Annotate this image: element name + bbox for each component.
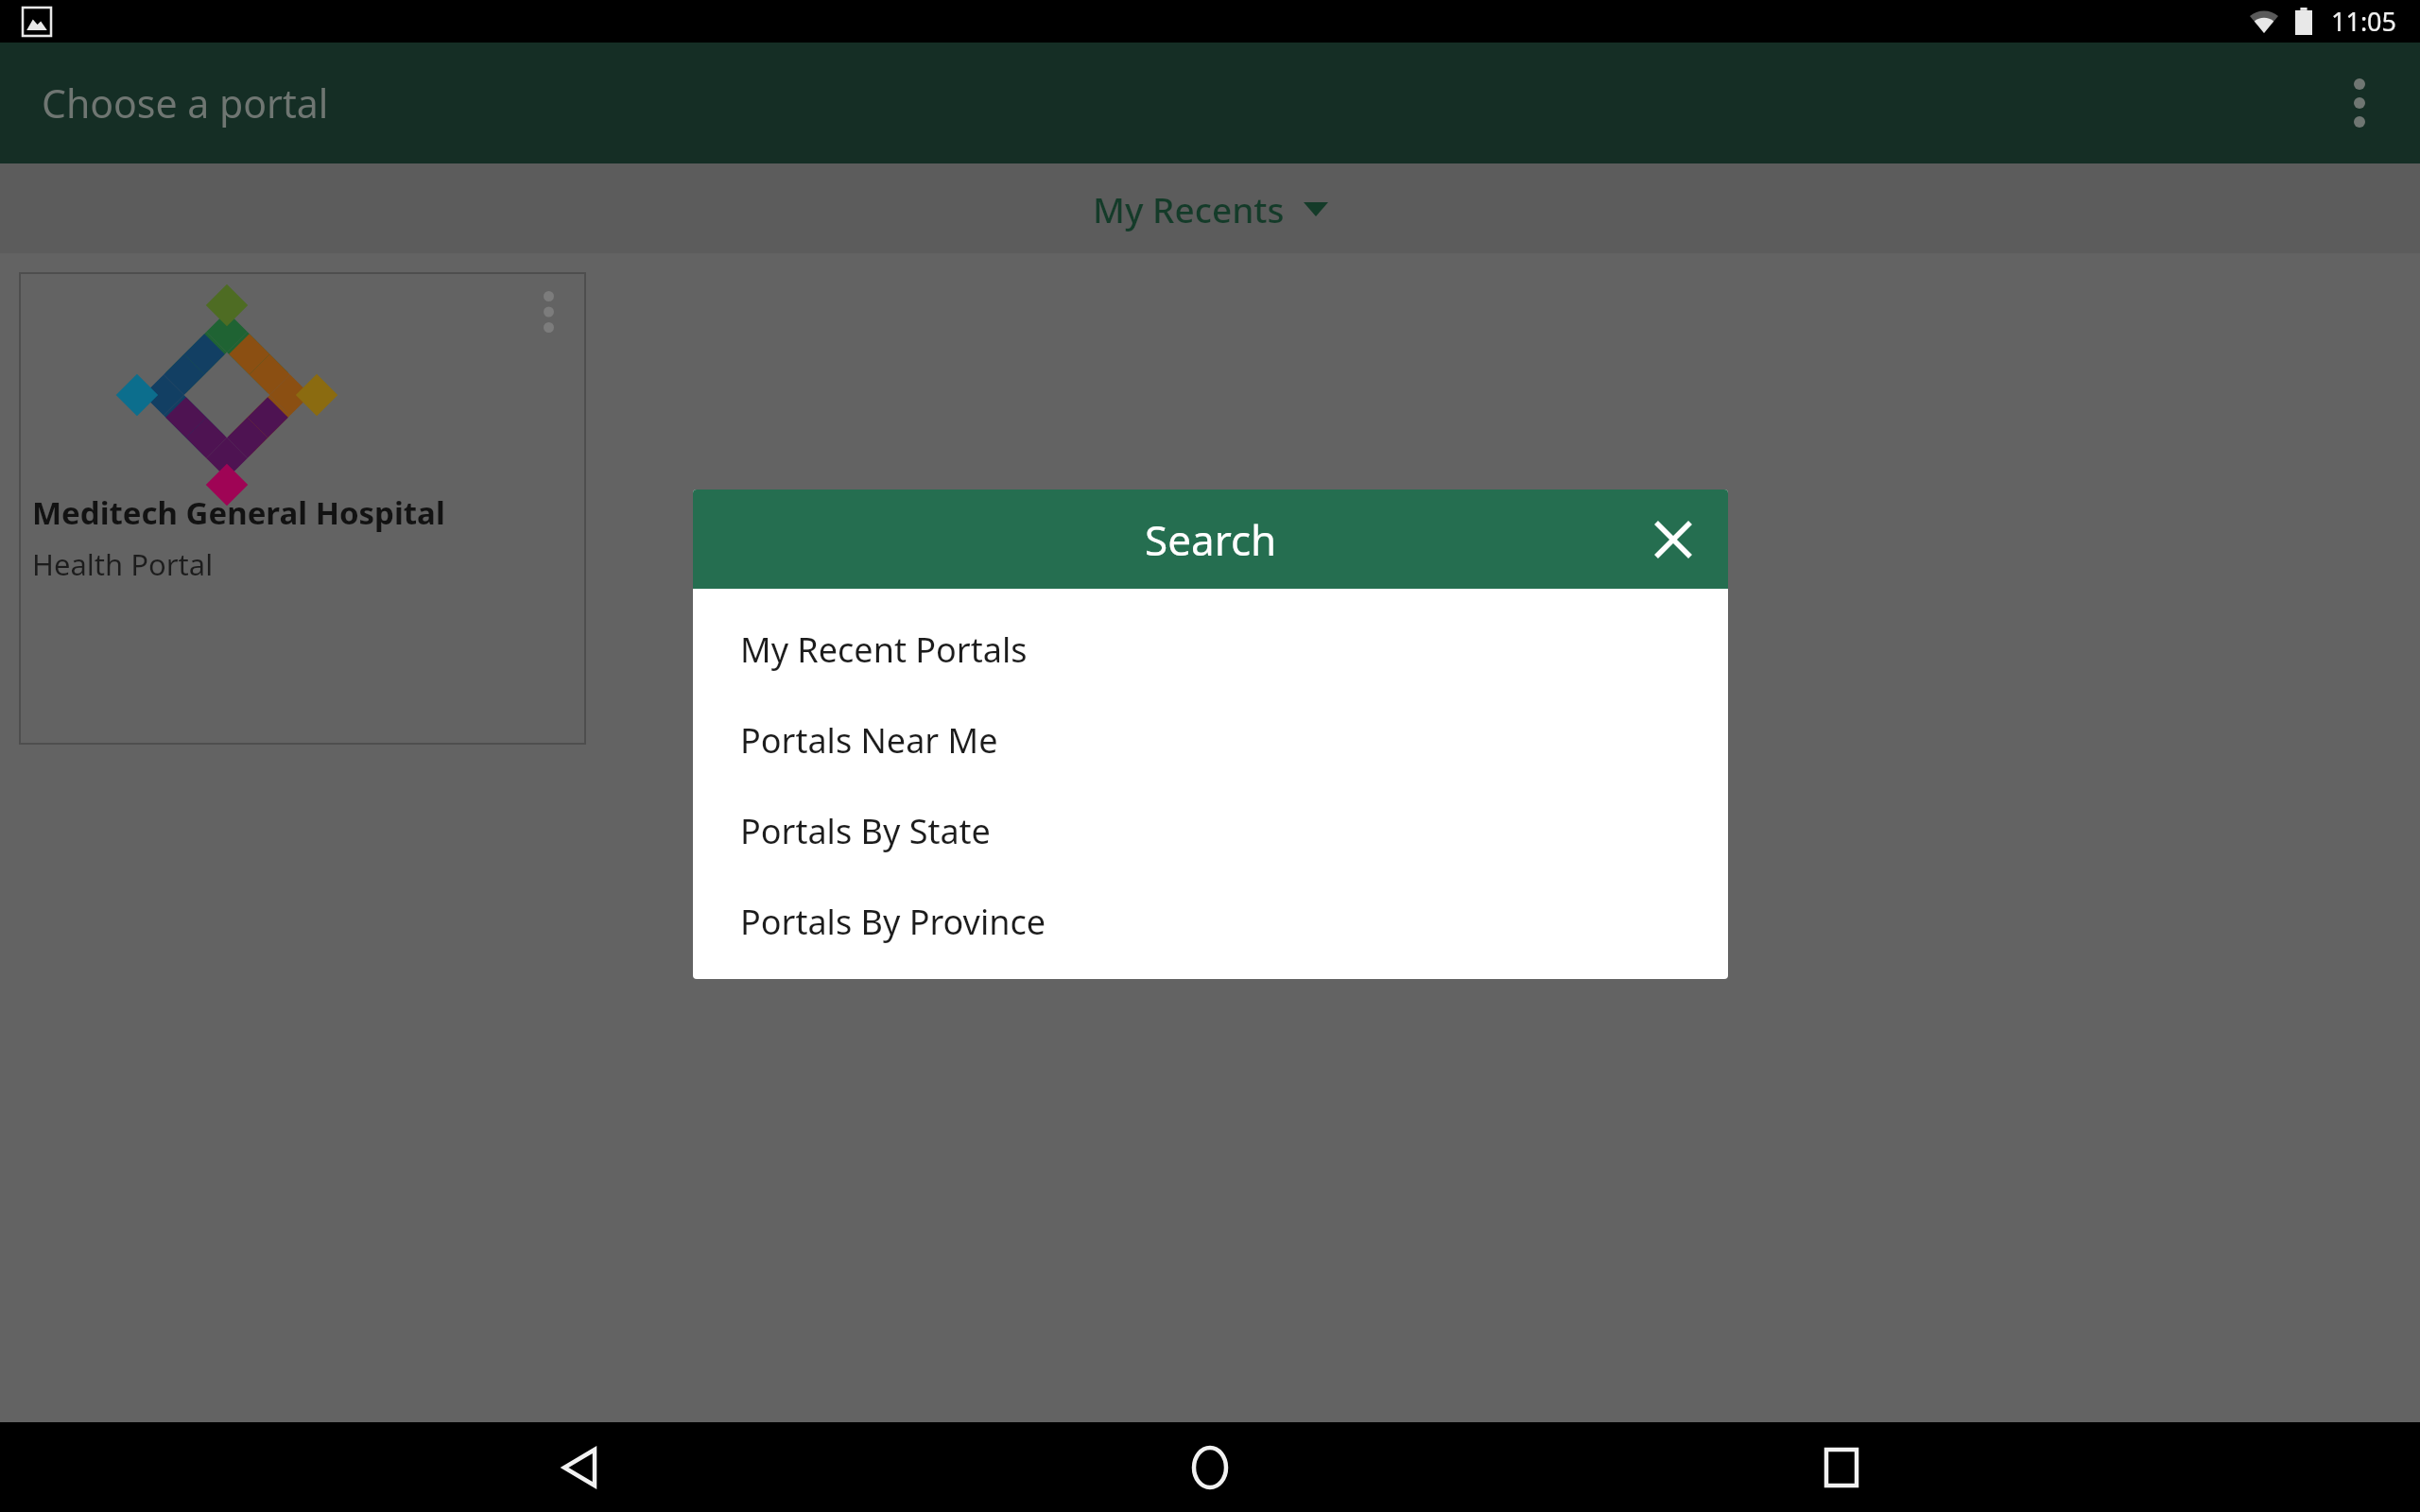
button[interactable]: Portal options <box>19 272 586 745</box>
button[interactable]: My Recents <box>1068 174 1353 244</box>
staticText: Portals By Province <box>740 899 1046 945</box>
button[interactable]: Recent apps <box>1789 1422 1893 1512</box>
button[interactable]: Back <box>527 1422 631 1512</box>
button[interactable]: Portal options <box>522 285 575 338</box>
staticText: Portals Near Me <box>740 717 998 764</box>
staticText: Choose a portal <box>42 77 329 129</box>
staticText: Portals By State <box>740 808 991 854</box>
staticText: My Recent Portals <box>740 627 1028 673</box>
staticText: 11:05 <box>2331 4 2397 39</box>
button[interactable]: Home <box>1158 1422 1262 1512</box>
staticText: Search <box>1145 511 1277 568</box>
button[interactable]: Close <box>1635 502 1711 577</box>
button[interactable]: More options <box>2314 58 2405 148</box>
staticText: Meditech General Hospital <box>32 491 445 534</box>
button[interactable]: Portals Near Me <box>693 695 1728 785</box>
staticText: Health Portal <box>32 544 214 584</box>
button[interactable]: Portals By State <box>693 785 1728 876</box>
button[interactable]: Portals By Province <box>693 876 1728 967</box>
button[interactable]: My Recent Portals <box>693 604 1728 695</box>
staticText: My Recents <box>1093 185 1285 232</box>
